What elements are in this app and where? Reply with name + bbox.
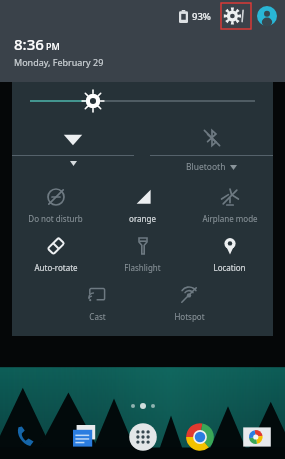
button[interactable]: orange [99, 185, 186, 226]
button[interactable]: Bluetooth [150, 124, 273, 173]
button[interactable]: Flashlight [99, 234, 186, 275]
button[interactable]: Cast [55, 283, 139, 324]
staticText: Location [213, 262, 246, 273]
staticText: Do not disturb [28, 213, 83, 224]
staticText: Cast [89, 311, 106, 322]
button[interactable]: Auto-rotate [12, 234, 99, 275]
staticText: PM [46, 40, 60, 52]
button[interactable]: Settings [221, 3, 251, 29]
button[interactable]: Phone [8, 417, 48, 457]
button[interactable]: All apps [123, 417, 163, 457]
button[interactable]: User [257, 6, 277, 26]
staticText: Monday, February 29 [14, 56, 104, 68]
staticText: Airplane mode [202, 213, 258, 224]
staticText: Hotspot [174, 311, 205, 322]
button[interactable]: Do not disturb [12, 185, 99, 226]
button[interactable]: Messages [65, 417, 105, 457]
button[interactable]: Chrome [180, 417, 220, 457]
button[interactable]: Brightness [12, 88, 273, 114]
staticText: Flashlight [124, 262, 161, 273]
staticText: Bluetooth [186, 161, 226, 173]
staticText: 93% [192, 10, 211, 23]
button[interactable]: Airplane mode [186, 185, 273, 226]
staticText: Auto-rotate [34, 262, 78, 273]
button[interactable]: Location [186, 234, 273, 275]
button[interactable]: Wi-Fi [12, 124, 134, 166]
staticText: orange [129, 213, 156, 224]
staticText: 8:36 [14, 34, 44, 54]
button[interactable]: Hotspot [147, 283, 231, 324]
button[interactable]: Camera [237, 417, 277, 457]
